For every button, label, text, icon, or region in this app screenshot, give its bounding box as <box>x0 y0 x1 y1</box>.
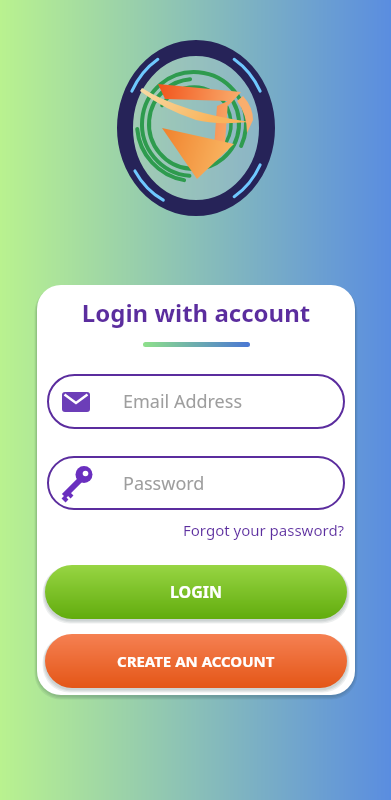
staticText: Email Address <box>123 389 243 414</box>
button[interactable]: LOGIN <box>45 565 347 619</box>
button[interactable]: CREATE AN ACCOUNT <box>45 634 347 688</box>
button[interactable]: Email Address <box>47 374 345 429</box>
staticText: LOGIN <box>170 581 223 603</box>
button[interactable]: Password <box>47 456 345 510</box>
staticText: Password <box>123 471 205 496</box>
staticText: CREATE AN ACCOUNT <box>117 651 275 671</box>
staticText: Login with account <box>37 296 355 329</box>
button[interactable]: Forgot your password? <box>183 520 345 540</box>
